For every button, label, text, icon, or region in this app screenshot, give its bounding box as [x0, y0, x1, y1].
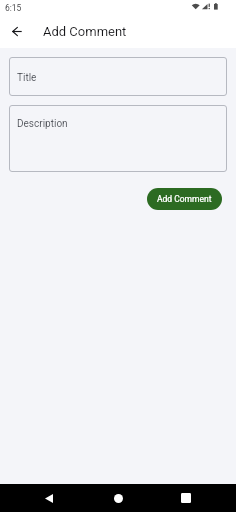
staticText: Add Comment [43, 24, 127, 39]
button[interactable]: Back [38, 487, 60, 509]
button[interactable]: Title [9, 57, 227, 96]
button[interactable]: Home [107, 487, 129, 509]
staticText: Title [17, 72, 37, 84]
button[interactable]: Recent apps [175, 487, 197, 509]
staticText: Description [17, 118, 68, 130]
staticText: Add Comment [157, 194, 212, 204]
button[interactable]: Navigate up [5, 20, 28, 43]
button[interactable]: Add Comment [147, 188, 222, 210]
button[interactable]: Description [9, 105, 227, 172]
staticText: 6:15 [5, 3, 22, 13]
